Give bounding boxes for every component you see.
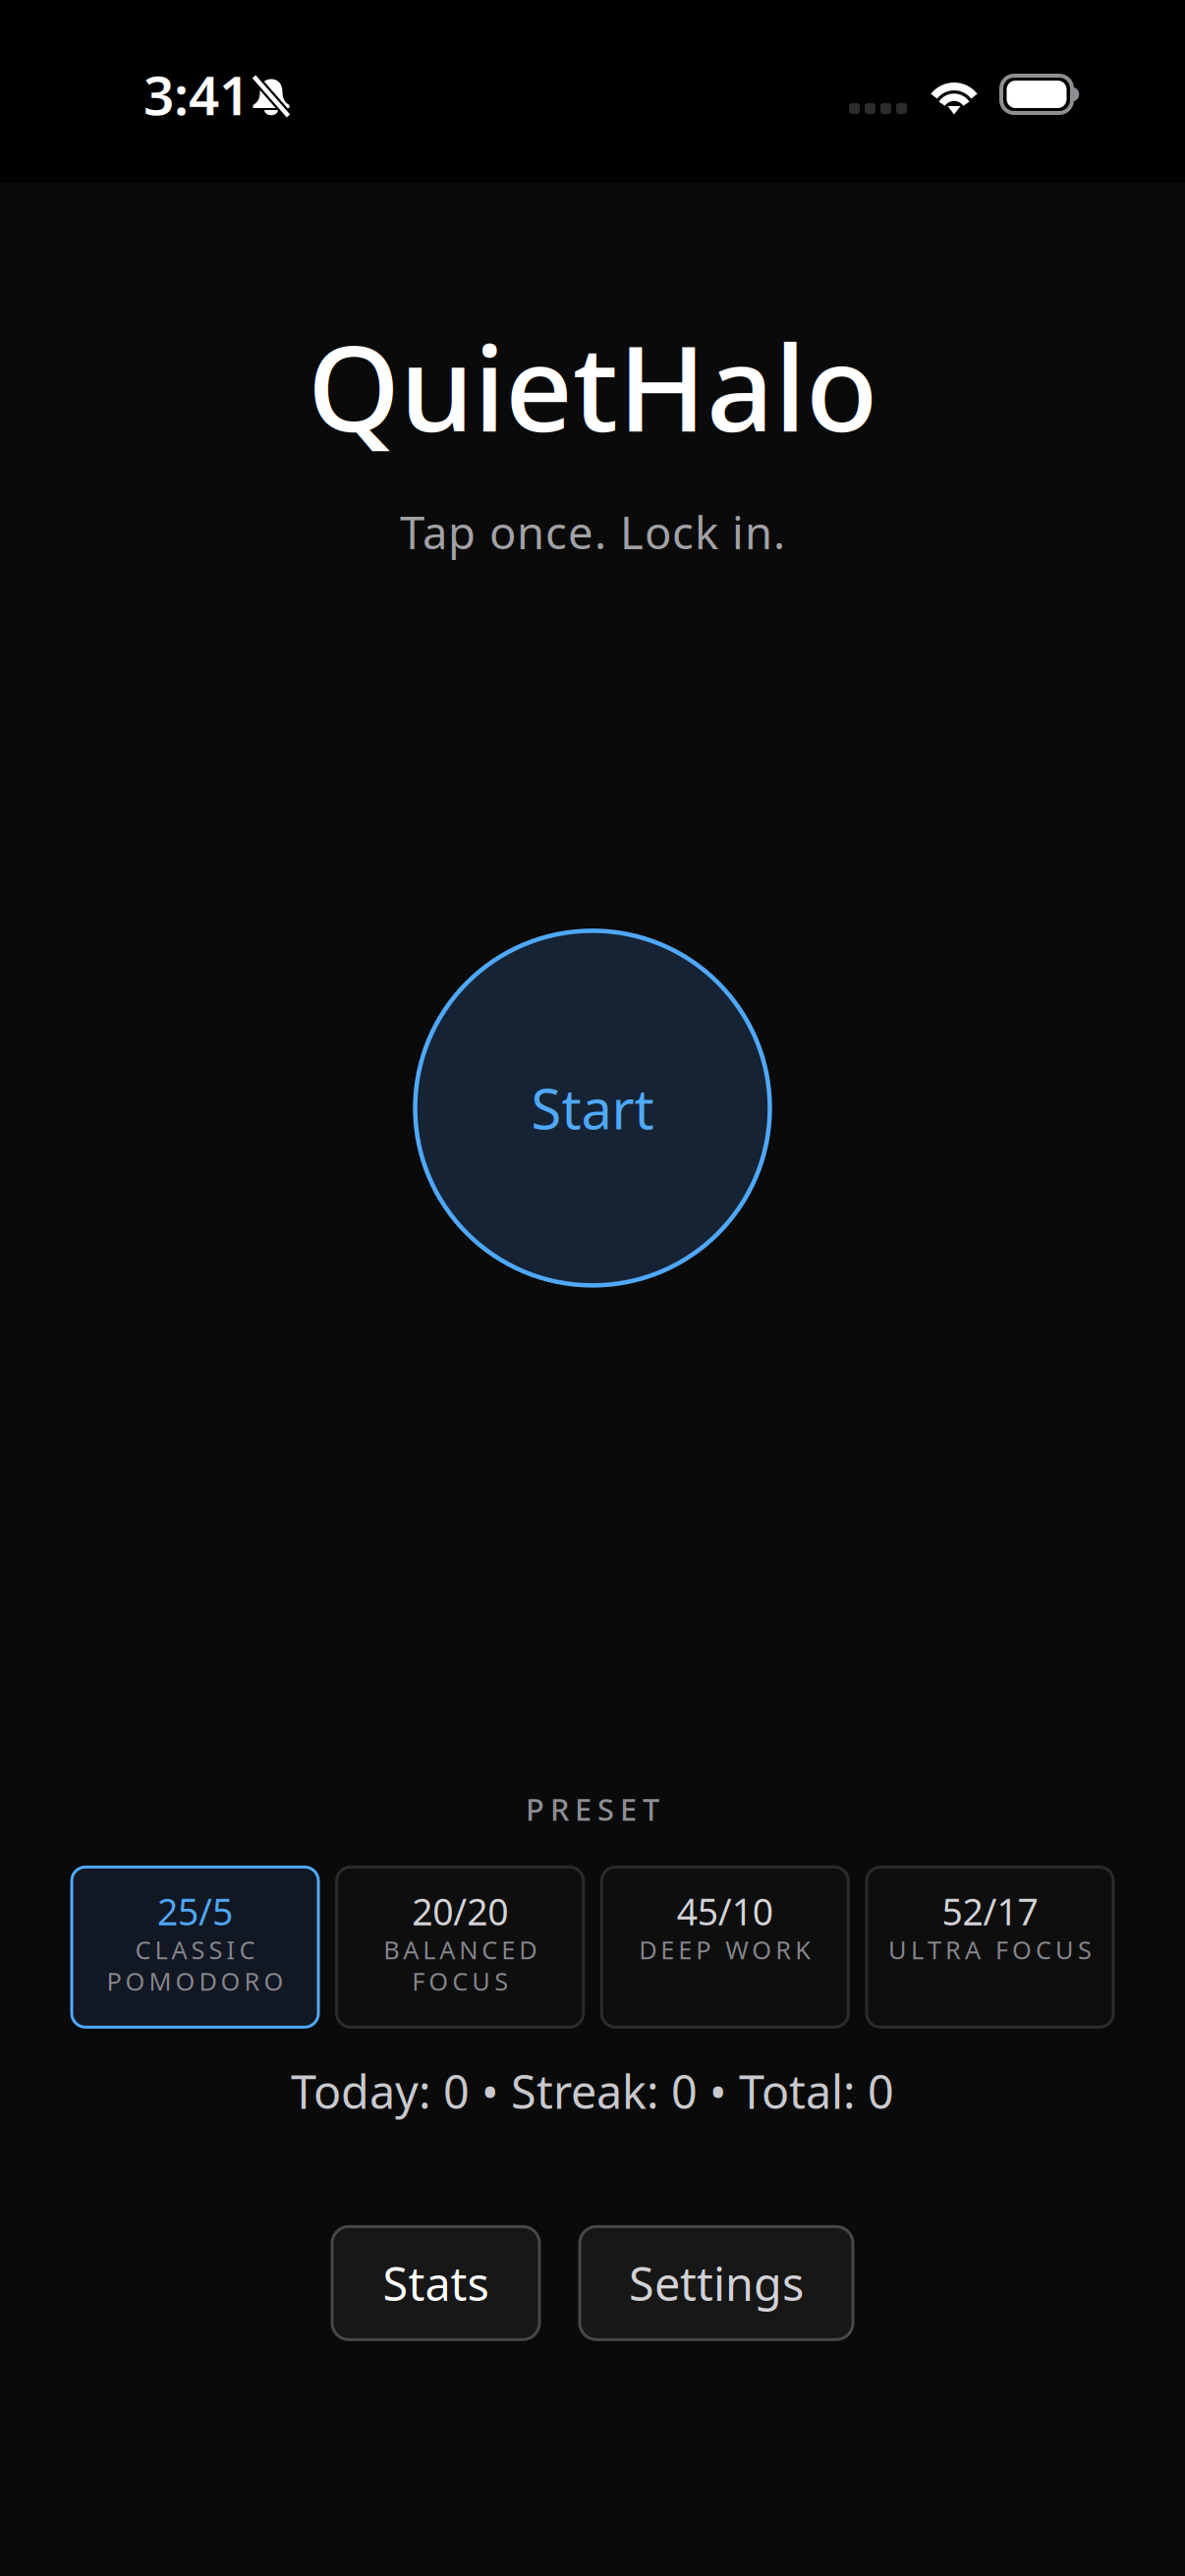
staticText: DEEP WORK	[639, 1933, 811, 1966]
staticText: Start	[531, 1072, 654, 1145]
staticText: 52/17	[942, 1887, 1038, 1936]
staticText: Stats	[383, 2253, 489, 2314]
button[interactable]: Stats	[332, 2227, 539, 2340]
staticText: ULTRA FOCUS	[888, 1933, 1092, 1966]
button[interactable]: Start	[415, 931, 770, 1285]
staticText: 3:41	[143, 59, 250, 130]
button[interactable]: 45/10	[602, 1867, 848, 2027]
button[interactable]: 25/5	[72, 1867, 318, 2027]
staticText: CLASSIC	[135, 1933, 255, 1966]
staticText: POMODORO	[107, 1964, 283, 1997]
staticText: FOCUS	[412, 1964, 508, 1997]
staticText: QuietHalo	[308, 308, 877, 464]
staticText: Today: 0 • Streak: 0 • Total: 0	[291, 2061, 894, 2122]
staticText: 45/10	[677, 1887, 773, 1936]
staticText: PRESET	[526, 1789, 659, 1829]
button[interactable]: 52/17	[867, 1867, 1113, 2027]
button[interactable]: Settings	[580, 2227, 853, 2340]
staticText: 25/5	[157, 1887, 233, 1936]
staticText: 20/20	[412, 1887, 508, 1936]
staticText: Settings	[629, 2253, 804, 2314]
button[interactable]: 20/20	[337, 1867, 583, 2027]
staticText: BALANCED	[383, 1933, 537, 1966]
staticText: Tap once. Lock in.	[400, 502, 785, 561]
